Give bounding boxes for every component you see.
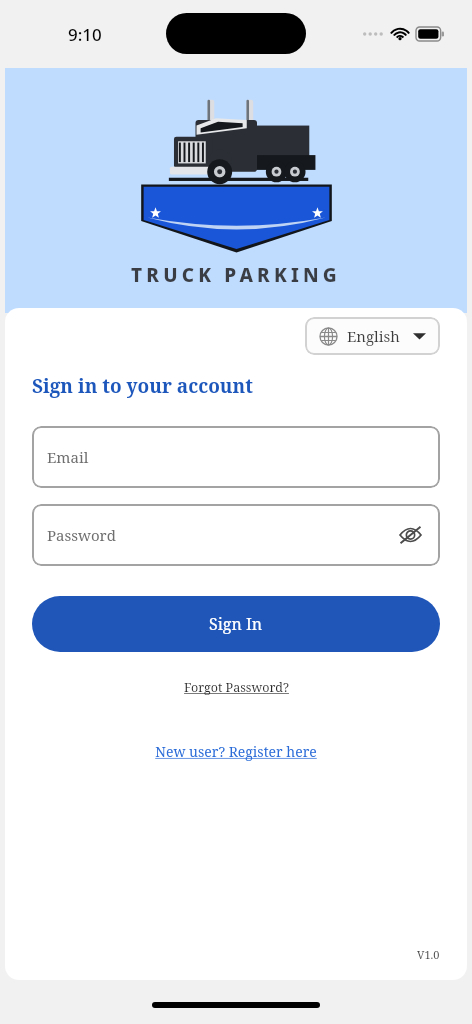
button[interactable]: Forgot Password?	[184, 679, 289, 696]
staticText: TRUCK PARKING	[131, 262, 341, 288]
staticText: Sign In	[209, 613, 263, 635]
staticText: Email	[47, 447, 89, 467]
button[interactable]: Email	[32, 426, 440, 488]
staticText: 9:10	[68, 23, 102, 46]
button[interactable]: Show password	[394, 519, 426, 551]
staticText: Sign in to your account	[32, 373, 253, 399]
button[interactable]: Password	[32, 504, 440, 566]
staticText: English	[347, 326, 400, 346]
button[interactable]: Sign In	[32, 596, 440, 652]
button[interactable]: New user? Register here	[155, 742, 317, 761]
staticText: Password	[47, 525, 116, 545]
button[interactable]: English	[305, 317, 440, 355]
staticText: V1.0	[417, 947, 440, 962]
